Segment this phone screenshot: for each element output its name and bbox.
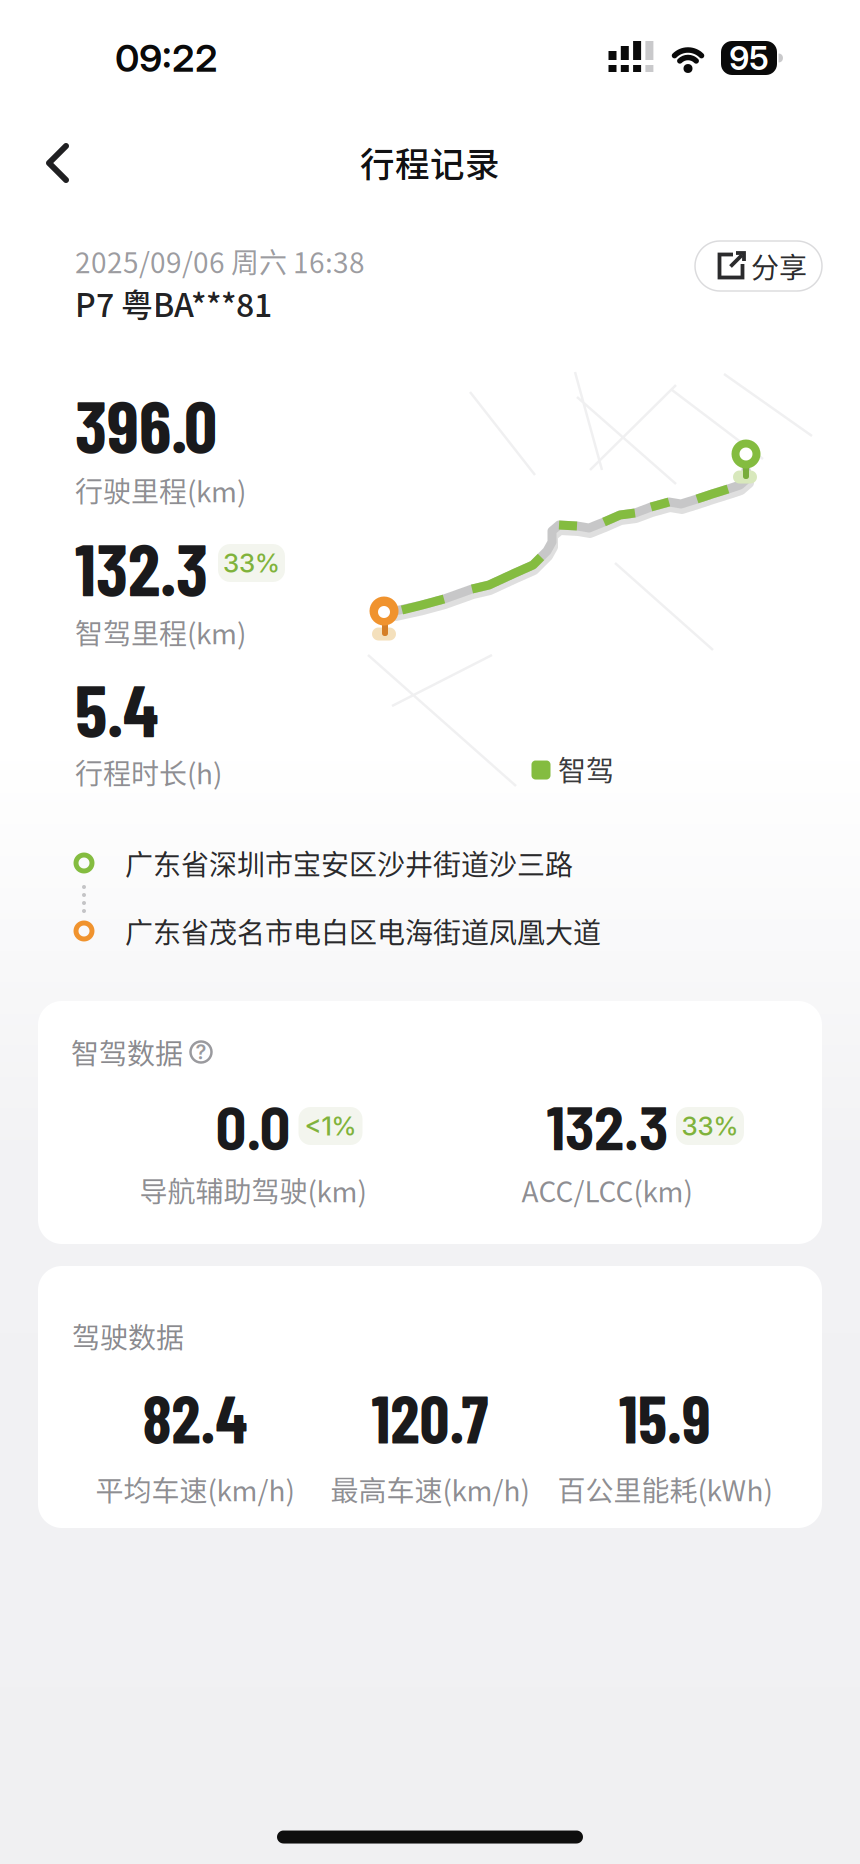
staticText: 平均车速(km/h) [95, 1469, 294, 1509]
staticText: ACC/LCC(km) [521, 1170, 692, 1210]
staticText: 132.3 [75, 523, 208, 611]
staticText: 15.9 [619, 1377, 711, 1457]
button[interactable] [40, 141, 84, 185]
staticText: 5.4 [75, 664, 158, 752]
staticText: 百公里能耗(kWh) [557, 1469, 772, 1509]
staticText: 95 [729, 38, 769, 78]
staticText: ? [195, 1040, 206, 1064]
staticText: 0.0 [215, 1090, 290, 1162]
staticText: 分享 [751, 246, 807, 286]
staticText: 396.0 [75, 380, 217, 468]
staticText: P7 粤BA***81 [75, 280, 272, 326]
staticText: 广东省深圳市宝安区沙井街道沙三路 [125, 843, 573, 883]
staticText: <1% [304, 1110, 356, 1142]
staticText: 2025/09/06 周六 16:38 [75, 241, 365, 281]
button[interactable]: 分享 [695, 241, 822, 291]
staticText: 09:22 [115, 35, 218, 81]
staticText: 行程记录 [360, 137, 500, 187]
staticText: 行程时长(h) [75, 752, 222, 792]
staticText: 智驾 [558, 749, 614, 789]
staticText: 智驾数据 [71, 1032, 183, 1072]
staticText: 33% [681, 1110, 738, 1142]
staticText: 33% [223, 547, 280, 579]
staticText: 驾驶数据 [72, 1316, 184, 1356]
staticText: 120.7 [371, 1377, 488, 1457]
button[interactable]: ? [188, 1039, 214, 1065]
staticText: 广东省茂名市电白区电海街道凤凰大道 [125, 911, 601, 951]
staticText: 132.3 [546, 1090, 668, 1162]
staticText: 智驾里程(km) [75, 612, 246, 652]
staticText: 82.4 [142, 1377, 247, 1457]
staticText: 最高车速(km/h) [330, 1469, 529, 1509]
staticText: 行驶里程(km) [75, 470, 246, 510]
staticText: 导航辅助驾驶(km) [139, 1170, 366, 1210]
